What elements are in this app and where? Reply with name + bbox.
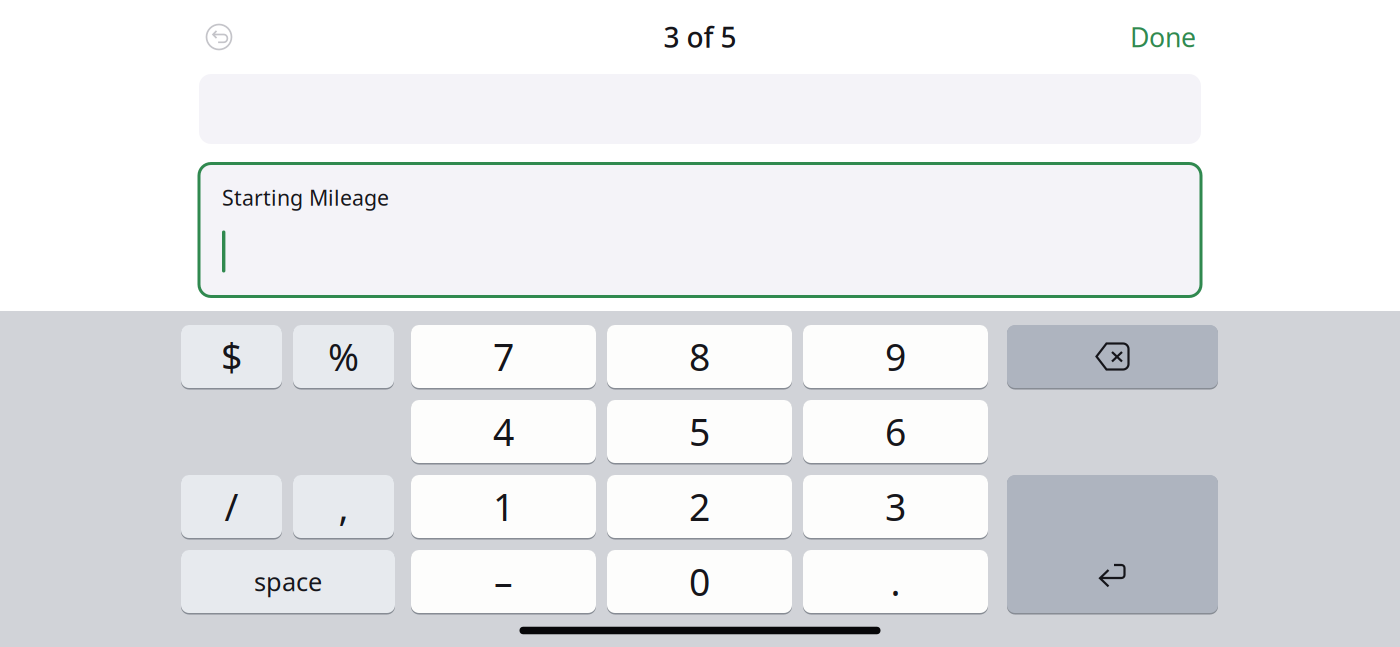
button[interactable]: .: [803, 550, 988, 613]
staticText: 1: [493, 482, 514, 531]
staticText: space: [254, 565, 322, 598]
staticText: –: [494, 557, 513, 606]
button[interactable]: 3: [803, 475, 988, 538]
button[interactable]: Starting Mileage: [199, 163, 1201, 296]
staticText: .: [890, 557, 900, 606]
button[interactable]: $: [181, 325, 282, 388]
staticText: 8: [689, 332, 710, 381]
button[interactable]: %: [293, 325, 394, 388]
staticText: Done: [1130, 19, 1196, 55]
button[interactable]: 7: [411, 325, 596, 388]
staticText: 7: [493, 332, 514, 381]
button[interactable]: space: [181, 550, 395, 613]
button[interactable]: 1: [411, 475, 596, 538]
staticText: 3 of 5: [663, 18, 736, 56]
button[interactable]: 8: [607, 325, 792, 388]
button[interactable]: Undo: [197, 15, 241, 59]
staticText: 2: [689, 482, 710, 531]
staticText: 3: [885, 482, 906, 531]
staticText: /: [224, 482, 238, 531]
staticText: 0: [689, 557, 710, 606]
button[interactable]: /: [181, 475, 282, 538]
button[interactable]: ,: [293, 475, 394, 538]
staticText: ,: [338, 482, 348, 531]
staticText: $: [221, 332, 242, 381]
button[interactable]: 0: [607, 550, 792, 613]
staticText: 9: [885, 332, 906, 381]
staticText: %: [328, 332, 359, 381]
button[interactable]: Delete: [1007, 325, 1218, 388]
button[interactable]: –: [411, 550, 596, 613]
button[interactable]: 6: [803, 400, 988, 463]
button[interactable]: 5: [607, 400, 792, 463]
staticText: 4: [493, 407, 514, 456]
staticText: Starting Mileage: [222, 183, 389, 212]
button[interactable]: Done: [1130, 15, 1196, 59]
button[interactable]: 2: [607, 475, 792, 538]
staticText: 6: [885, 407, 906, 456]
staticText: 5: [689, 407, 710, 456]
button[interactable]: 4: [411, 400, 596, 463]
button[interactable]: Return: [1007, 475, 1218, 613]
button[interactable]: 9: [803, 325, 988, 388]
